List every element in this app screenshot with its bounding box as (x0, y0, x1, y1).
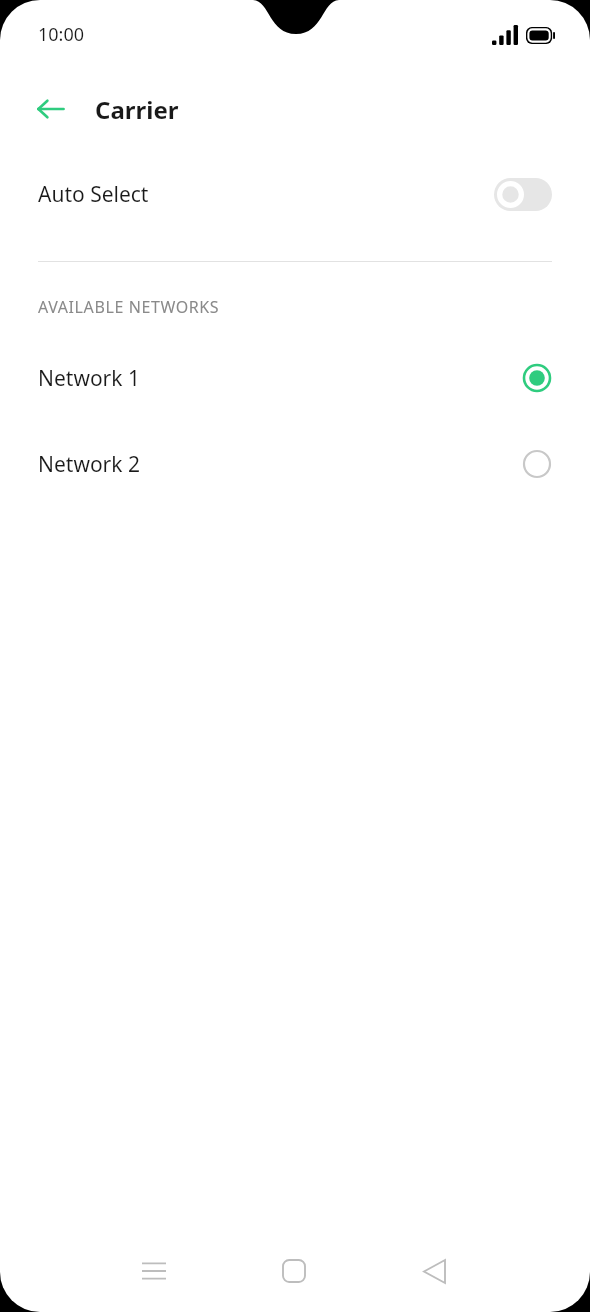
button[interactable]: Recent apps (112, 1230, 196, 1312)
staticText: Auto Select (38, 180, 494, 209)
button[interactable]: Network 2 (0, 430, 590, 498)
button[interactable]: Home (252, 1230, 336, 1312)
staticText: 10:00 (38, 22, 85, 47)
button[interactable]: Back (392, 1230, 476, 1312)
staticText: Network 1 (38, 364, 522, 393)
button[interactable]: Auto Select toggle (494, 178, 552, 211)
button[interactable]: Network 1 (0, 344, 590, 412)
staticText: Carrier (95, 93, 179, 126)
staticText: AVAILABLE NETWORKS (38, 296, 220, 318)
button[interactable]: Auto Select (0, 148, 590, 240)
button[interactable]: Back (24, 82, 78, 136)
staticText: Network 2 (38, 450, 522, 479)
